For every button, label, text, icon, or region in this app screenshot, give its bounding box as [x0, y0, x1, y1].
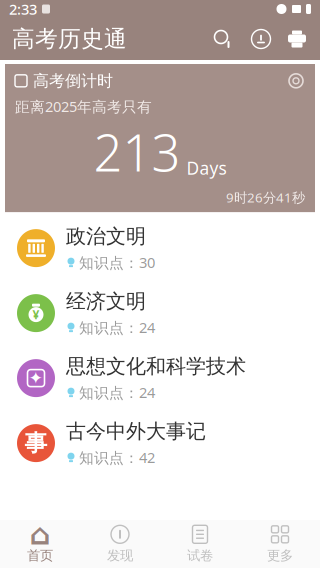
staticText: 古今中外大事记 — [66, 419, 206, 444]
button[interactable]: 下载 — [242, 17, 280, 61]
staticText: ¥ — [32, 307, 39, 323]
staticText: 事 — [24, 429, 47, 457]
staticText: Days — [186, 156, 226, 179]
button[interactable]: ✦ — [5, 349, 315, 407]
button[interactable]: ¥ — [5, 284, 315, 342]
staticText: 政治文明 — [66, 224, 146, 249]
staticText: 试卷 — [187, 547, 213, 564]
staticText: 知识点：24 — [79, 318, 155, 337]
staticText: 更多 — [267, 547, 293, 564]
staticText: 思想文化和科学技术 — [66, 354, 246, 379]
staticText: 高考历史通 — [12, 25, 127, 53]
staticText: 首页 — [27, 547, 53, 564]
button[interactable]: 打印 — [280, 17, 314, 61]
staticText: ⌂ — [29, 518, 50, 551]
staticText: 知识点：30 — [79, 253, 155, 272]
staticText: 高考倒计时 — [33, 71, 113, 91]
staticText: 9时26分41秒 — [226, 188, 305, 206]
button[interactable]: 政治文明 — [5, 219, 315, 277]
button[interactable]: 更多 — [240, 520, 320, 568]
staticText: 经济文明 — [66, 289, 146, 314]
staticText: 213 — [93, 118, 180, 185]
button[interactable]: 试卷 — [160, 520, 240, 568]
button[interactable]: 设置 — [287, 72, 305, 90]
staticText: 距离2025年高考只有 — [15, 97, 152, 116]
staticText: ✦ — [28, 368, 43, 388]
staticText: 2:33 — [9, 0, 37, 19]
staticText: 知识点：42 — [79, 448, 155, 467]
button[interactable]: 事 — [5, 414, 315, 472]
staticText: 发现 — [107, 547, 133, 564]
button[interactable]: ⌂ — [0, 520, 80, 568]
staticText: 知识点：24 — [79, 383, 155, 402]
button[interactable]: 发现 — [80, 520, 160, 568]
button[interactable]: 搜索 — [204, 17, 242, 61]
